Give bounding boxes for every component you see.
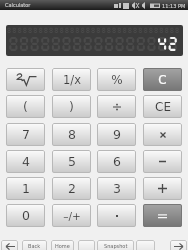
button[interactable]: 2 [52, 177, 91, 200]
staticText: ) [69, 99, 74, 114]
button[interactable]: C [143, 68, 182, 91]
button[interactable] [143, 123, 182, 146]
button[interactable] [143, 177, 182, 200]
staticText: 9 [113, 127, 121, 142]
staticText: 6 [113, 154, 121, 169]
button[interactable] [136, 240, 155, 250]
staticText: –/+ [63, 210, 81, 222]
button[interactable] [143, 150, 182, 173]
button[interactable]: ) [52, 95, 91, 118]
button[interactable]: Snapshot [97, 240, 134, 250]
staticText: 2 [68, 181, 76, 196]
staticText: 5 [68, 154, 76, 169]
staticText: Snapshot [104, 243, 128, 249]
button[interactable]: –/+ [52, 204, 91, 227]
staticText: 3 [113, 181, 121, 196]
button[interactable]: Home [51, 240, 74, 250]
button[interactable]: ( [6, 95, 45, 118]
staticText: C [158, 73, 167, 87]
button[interactable]: 3 [97, 177, 136, 200]
button[interactable] [143, 204, 182, 227]
staticText: 7 [22, 127, 30, 142]
staticText: 11:13 PM [162, 3, 186, 9]
button[interactable]: 9 [97, 123, 136, 146]
button[interactable]: 0 [6, 204, 45, 227]
button[interactable]: 4 [6, 150, 45, 173]
button[interactable] [97, 95, 136, 118]
button[interactable]: Forward [170, 240, 187, 250]
staticText: Calculator [5, 2, 31, 8]
staticText: Back [28, 243, 41, 249]
button[interactable]: 7 [6, 123, 45, 146]
staticText: 1 [22, 181, 30, 196]
staticText: CE [155, 100, 171, 114]
button[interactable]: 1 [6, 177, 45, 200]
button[interactable]: CE [143, 95, 182, 118]
button[interactable] [97, 204, 136, 227]
staticText: ( [23, 99, 28, 114]
button[interactable]: 6 [97, 150, 136, 173]
staticText: 0 [22, 208, 30, 223]
button[interactable]: Back [1, 240, 18, 250]
button[interactable]: 8 [52, 123, 91, 146]
staticText: 8 [68, 127, 76, 142]
staticText: 1/x [63, 73, 81, 86]
button[interactable]: 5 [52, 150, 91, 173]
staticText: % [111, 73, 123, 87]
button[interactable]: % [97, 68, 136, 91]
button[interactable]: 1/x [52, 68, 91, 91]
staticText: 4 [22, 154, 30, 169]
button[interactable] [6, 68, 45, 91]
button[interactable] [78, 240, 95, 250]
staticText: Home [55, 243, 70, 249]
button[interactable]: Back [22, 240, 47, 250]
